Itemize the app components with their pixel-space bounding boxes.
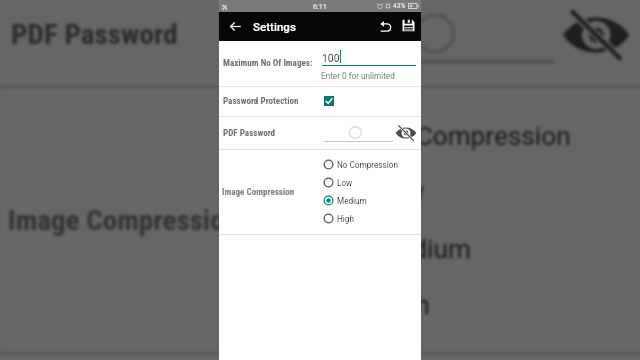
staticText: Enter 0 for unlimited — [321, 71, 395, 81]
button[interactable]: Show password — [393, 120, 419, 146]
staticText: Maximum No Of Images: — [223, 58, 313, 69]
staticText: Medium — [376, 233, 471, 264]
button[interactable]: Undo — [373, 14, 398, 39]
staticText: No Compression — [376, 120, 571, 151]
staticText: High — [337, 214, 354, 224]
staticText: Image Compression — [8, 204, 241, 239]
button[interactable]: Navigate up — [223, 14, 248, 39]
staticText: No Compression — [337, 160, 398, 170]
staticText: 6:11 — [313, 2, 327, 10]
button[interactable]: Low — [331, 170, 427, 211]
staticText: 100 — [322, 52, 340, 64]
staticText: Password Protection — [223, 96, 299, 107]
staticText: Low — [337, 178, 353, 188]
button[interactable]: Low — [323, 176, 353, 189]
button[interactable]: High — [323, 212, 354, 225]
staticText: PDF Password — [11, 19, 180, 54]
staticText: Image Compression — [222, 187, 295, 198]
button[interactable]: Save — [396, 13, 421, 38]
staticText: High — [376, 289, 430, 321]
button[interactable]: No Compression — [323, 158, 398, 171]
staticText: Settings — [253, 20, 296, 34]
button[interactable]: Medium — [323, 194, 367, 207]
button[interactable]: Password Protection — [219, 87, 421, 116]
button[interactable]: Show password — [555, 0, 638, 76]
staticText: Medium — [337, 196, 367, 206]
staticText: Low — [376, 176, 427, 208]
button[interactable]: No Compression — [331, 113, 571, 154]
button[interactable]: Maximum No Of Images: — [219, 41, 421, 86]
button[interactable]: Medium — [331, 226, 471, 267]
staticText: 43% — [393, 2, 406, 10]
staticText: PDF Password — [223, 128, 276, 139]
button[interactable]: High — [331, 283, 430, 324]
